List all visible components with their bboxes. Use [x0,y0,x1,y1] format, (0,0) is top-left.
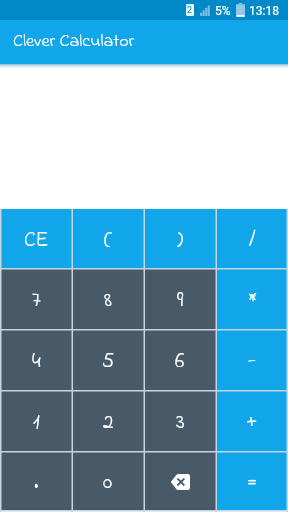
staticText: - [248,347,256,378]
button[interactable]: = [216,452,288,511]
button[interactable]: * [216,269,288,330]
staticText: + [246,408,258,439]
button[interactable]: 0 [72,452,144,511]
button[interactable]: - [216,330,288,391]
button[interactable]: 9 [144,269,216,330]
staticText: CE [24,226,49,257]
button[interactable]: / [216,209,288,269]
staticText: ) [177,226,184,257]
button[interactable]: 3 [144,391,216,452]
button[interactable]: 1 [0,391,72,452]
staticText: Clever Calculator [13,29,135,55]
button[interactable]: . [0,452,72,511]
staticText: ( [104,226,113,257]
staticText: 8 [104,286,112,317]
button[interactable]: 7 [0,269,72,330]
staticText: 9 [177,286,184,317]
button[interactable]: Backspace [144,452,216,511]
staticText: 7 [32,286,41,317]
button[interactable]: ) [144,209,216,269]
staticText: 2 [187,5,193,16]
button[interactable]: 5 [72,330,144,391]
staticText: 1 [33,408,40,439]
staticText: 13:18 [249,4,279,18]
button[interactable]: 8 [72,269,144,330]
staticText: 3 [176,408,185,439]
staticText: 5 [102,347,115,378]
staticText: = [247,468,258,499]
button[interactable]: CE [0,209,72,269]
button[interactable]: 6 [144,330,216,391]
button[interactable]: 4 [0,330,72,391]
button[interactable]: ( [72,209,144,269]
staticText: 2 [103,408,114,439]
button[interactable]: 2 [72,391,144,452]
button[interactable]: + [216,391,288,452]
staticText: 6 [175,347,185,378]
staticText: 0 [103,468,113,499]
staticText: * [248,286,257,317]
staticText: / [249,226,256,257]
staticText: 5% [215,4,231,18]
staticText: . [34,468,39,499]
staticText: 4 [32,347,41,378]
